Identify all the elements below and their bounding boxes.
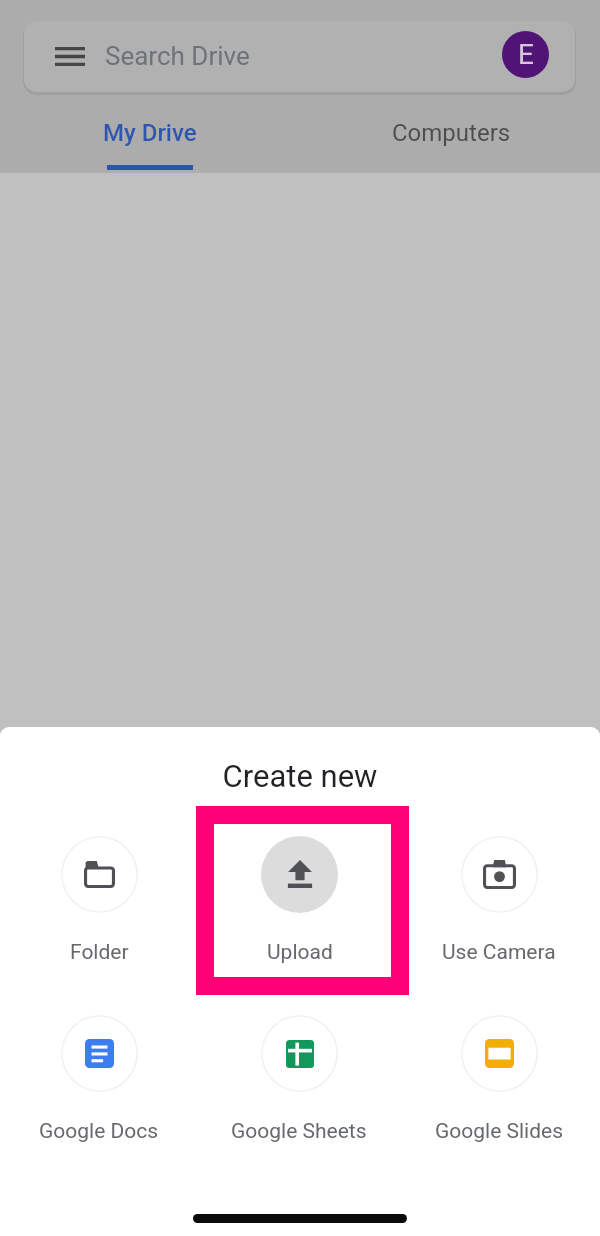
staticText: Google Slides	[435, 1119, 563, 1144]
staticText: My Drive	[103, 119, 197, 147]
staticText: Upload	[267, 940, 333, 965]
button[interactable]: Computers	[341, 104, 561, 170]
staticText: E	[518, 38, 534, 71]
button[interactable]: Google Sheets	[221, 1009, 377, 1149]
button[interactable]: Google Slides	[421, 1009, 577, 1149]
staticText: Google Docs	[39, 1119, 159, 1144]
staticText: Computers	[392, 119, 511, 147]
staticText: Create new	[0, 758, 600, 794]
button[interactable]: My Drive	[40, 104, 260, 170]
button[interactable]: Open navigation drawer	[46, 32, 94, 80]
staticText: Search Drive	[105, 41, 250, 71]
button[interactable]: Upload	[221, 830, 377, 970]
staticText: Folder	[70, 940, 129, 965]
staticText: Use Camera	[442, 940, 556, 965]
button[interactable]: Use Camera	[421, 830, 577, 970]
button[interactable]: Open navigation drawer	[24, 21, 575, 92]
button[interactable]: Folder	[21, 830, 177, 970]
button[interactable]: Google Docs	[21, 1009, 177, 1149]
staticText: Google Sheets	[231, 1119, 367, 1144]
button[interactable]: Account	[502, 31, 549, 78]
